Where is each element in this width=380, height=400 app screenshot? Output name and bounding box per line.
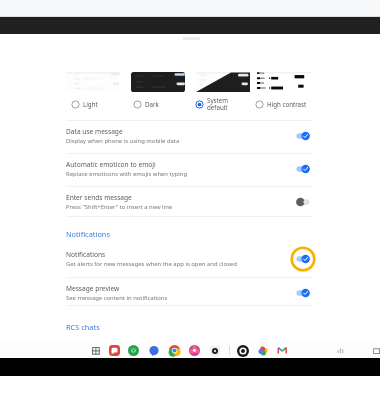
button[interactable]: Enter sends message xyxy=(0,191,380,215)
staticText: Automatic emoticon to emoji xyxy=(66,160,156,169)
staticText: Notifications xyxy=(66,250,106,259)
button[interactable]: Toggle on xyxy=(290,248,316,270)
button[interactable]: Message preview xyxy=(0,282,380,306)
button[interactable]: Toggle on xyxy=(290,282,316,304)
button[interactable]: Messages xyxy=(109,345,120,356)
staticText: Enter sends message xyxy=(66,193,132,202)
staticText: See message content in notifications xyxy=(66,294,168,302)
button[interactable]: System default xyxy=(195,96,226,112)
button[interactable]: Notifications xyxy=(0,248,380,272)
button[interactable]: Light theme preview xyxy=(66,72,120,92)
button[interactable]: Launcher xyxy=(91,346,101,356)
button[interactable]: Chrome xyxy=(169,345,180,356)
button[interactable]: Dark theme preview xyxy=(131,72,185,92)
staticText: High contrast xyxy=(267,100,307,108)
button[interactable]: Data use message xyxy=(0,125,380,149)
button[interactable]: System default theme preview xyxy=(196,72,250,92)
staticText: RCS chats xyxy=(66,322,100,332)
button[interactable]: Photos xyxy=(189,345,200,356)
button[interactable]: Gmail xyxy=(277,345,288,356)
button[interactable]: High contrast xyxy=(255,96,304,112)
staticText: Get alerts for new messages when the app… xyxy=(66,260,237,268)
staticText: System default xyxy=(207,96,229,112)
button[interactable]: Notifications xyxy=(66,228,110,240)
button[interactable]: Toggle on xyxy=(290,125,316,147)
staticText: Data use message xyxy=(66,127,123,136)
staticText: Replace emoticons with emojis when typin… xyxy=(66,170,188,178)
button[interactable]: RCS chats xyxy=(66,321,100,333)
staticText: Light xyxy=(83,100,98,108)
button[interactable]: Chat xyxy=(149,346,159,356)
button[interactable]: Dark xyxy=(133,96,156,112)
button[interactable]: Automatic emoticon to emoji xyxy=(0,158,380,182)
button[interactable]: Camera xyxy=(210,346,220,356)
button[interactable]: Light xyxy=(71,96,95,112)
button[interactable]: Battery xyxy=(373,347,380,355)
button[interactable]: Assistant xyxy=(237,345,249,357)
staticText: Dark xyxy=(145,100,159,108)
staticText: Display when phone is using mobile data xyxy=(66,137,180,145)
staticText: Press "Shift+Enter" to insert a new line xyxy=(66,203,173,211)
button[interactable]: High contrast theme preview xyxy=(257,72,311,92)
staticText: Message preview xyxy=(66,284,120,293)
button[interactable]: Toggle off xyxy=(290,191,316,213)
button[interactable]: Network xyxy=(337,347,345,355)
button[interactable]: Google Photos xyxy=(258,346,268,356)
button[interactable]: Phone xyxy=(128,345,139,356)
button[interactable]: Toggle on xyxy=(290,158,316,180)
staticText: Notifications xyxy=(66,229,110,239)
